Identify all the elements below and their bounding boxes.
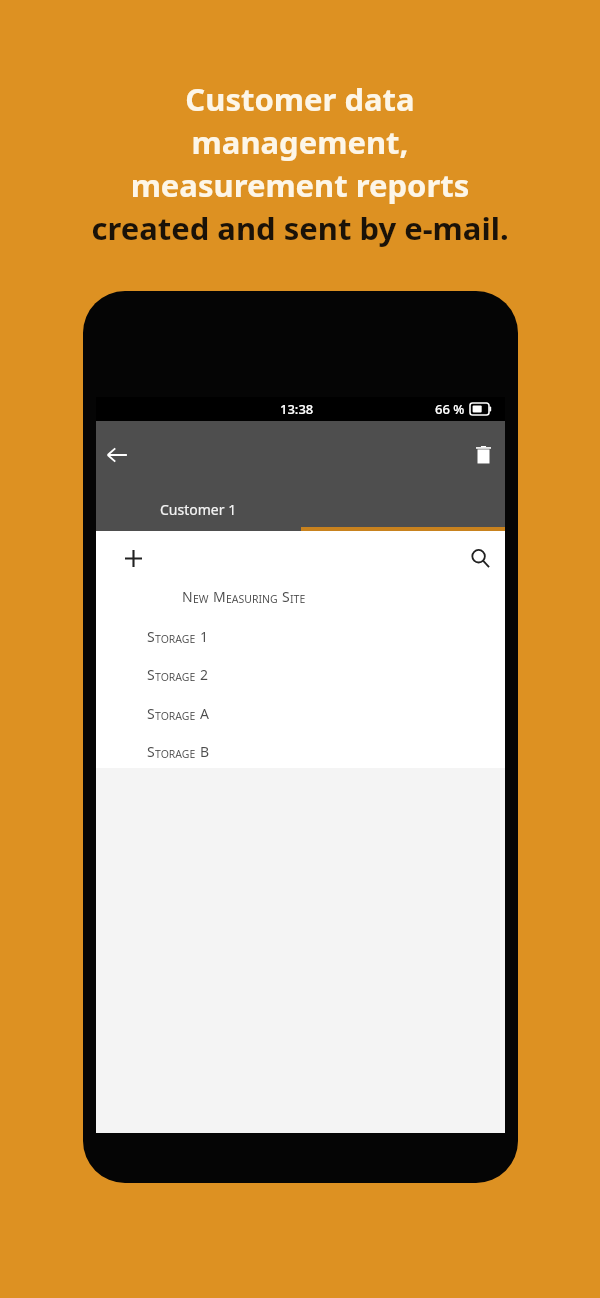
staticText: management, xyxy=(0,121,600,163)
button[interactable]: Customer 1 xyxy=(96,487,301,531)
staticText: EW xyxy=(193,592,209,606)
staticText: B xyxy=(200,742,210,761)
staticText: TORAGE xyxy=(155,670,196,684)
staticText: 66 % xyxy=(435,400,465,418)
staticText: 2 xyxy=(200,665,209,684)
staticText: N xyxy=(182,587,193,606)
staticText: S xyxy=(282,587,290,606)
button[interactable]: Search xyxy=(460,538,500,578)
staticText: S xyxy=(147,742,155,761)
staticText: Customer 1 xyxy=(160,500,237,519)
staticText: S xyxy=(147,665,155,684)
staticText: M xyxy=(213,587,226,606)
button[interactable]: S xyxy=(96,698,505,728)
staticText: EASURING xyxy=(226,592,278,606)
staticText: S xyxy=(147,627,155,646)
button[interactable]: Back xyxy=(97,435,137,475)
staticText: TORAGE xyxy=(155,632,196,646)
button[interactable]: S xyxy=(96,659,505,689)
staticText: created and sent by e-mail. xyxy=(0,207,600,249)
staticText: Customer data xyxy=(0,78,600,120)
staticText: A xyxy=(200,704,209,723)
button[interactable]: S xyxy=(96,621,505,651)
staticText: ITE xyxy=(290,592,306,606)
staticText: 1 xyxy=(200,627,209,646)
staticText: 13:38 xyxy=(280,400,314,418)
button[interactable]: N xyxy=(96,581,505,611)
button[interactable]: S xyxy=(96,736,505,766)
staticText: measurement reports xyxy=(0,164,600,206)
staticText: TORAGE xyxy=(155,747,196,761)
staticText: TORAGE xyxy=(155,709,196,723)
staticText: S xyxy=(147,704,155,723)
button[interactable]: Delete xyxy=(463,435,503,475)
button[interactable]: Add xyxy=(113,538,153,578)
